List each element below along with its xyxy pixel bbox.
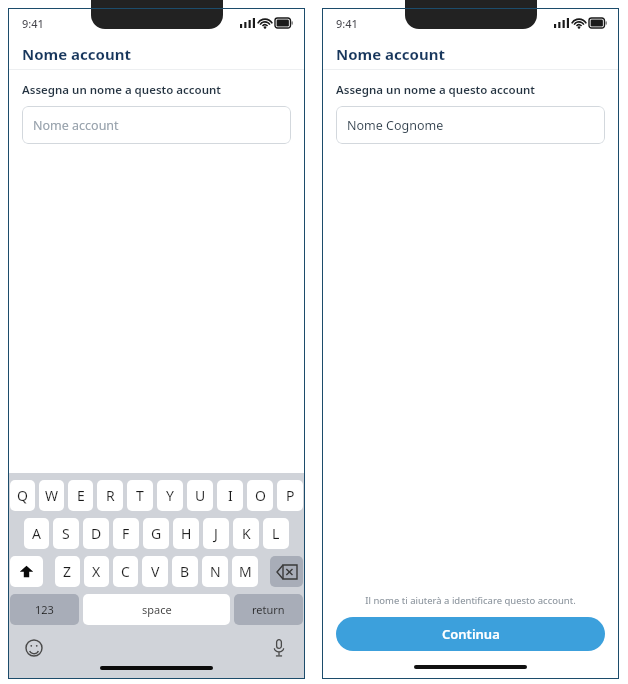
staticText: W <box>45 486 59 505</box>
staticText: space <box>142 602 172 617</box>
button[interactable]: space <box>83 594 230 625</box>
staticText: U <box>195 486 206 505</box>
button[interactable]: J <box>203 518 229 549</box>
button[interactable]: Z <box>55 556 80 587</box>
staticText: T <box>136 486 144 505</box>
staticText: Z <box>63 562 72 581</box>
staticText: 123 <box>35 602 54 617</box>
staticText: Nome Cognome <box>347 117 444 134</box>
button[interactable]: R <box>97 480 123 511</box>
staticText: Nome account <box>22 44 131 64</box>
button[interactable]: C <box>113 556 138 587</box>
staticText: Assegna un nome a questo account <box>22 82 222 98</box>
button[interactable]: H <box>173 518 199 549</box>
staticText: V <box>151 562 160 581</box>
staticText: X <box>92 562 101 581</box>
button[interactable] <box>270 556 303 587</box>
button[interactable]: S <box>53 518 79 549</box>
staticText: R <box>106 486 115 505</box>
button[interactable]: I <box>217 480 243 511</box>
staticText: Q <box>17 486 28 505</box>
staticText: Nome account <box>336 44 445 64</box>
button[interactable]: Emoji <box>22 636 46 660</box>
button[interactable]: 123 <box>10 594 79 625</box>
button[interactable]: Dictation <box>267 636 291 660</box>
staticText: return <box>252 602 285 617</box>
button[interactable]: Y <box>157 480 183 511</box>
staticText: P <box>286 486 295 505</box>
staticText: 9:41 <box>22 16 44 31</box>
button[interactable]: Nome Cognome <box>336 106 605 144</box>
button[interactable]: Nome account <box>22 106 291 144</box>
staticText: Il nome ti aiuterà a identificare questo… <box>338 594 603 607</box>
staticText: M <box>239 562 252 581</box>
button[interactable]: Continua <box>336 617 605 651</box>
staticText: O <box>255 486 266 505</box>
button[interactable]: G <box>143 518 169 549</box>
staticText: Assegna un nome a questo account <box>336 82 536 98</box>
staticText: A <box>32 524 41 543</box>
staticText: 9:41 <box>336 16 358 31</box>
staticText: S <box>62 524 70 543</box>
staticText: Continua <box>442 625 500 643</box>
button[interactable]: O <box>247 480 273 511</box>
staticText: J <box>214 524 218 543</box>
button[interactable]: Shift <box>10 556 43 587</box>
staticText: D <box>91 524 102 543</box>
staticText: L <box>272 524 280 543</box>
staticText: I <box>228 486 233 505</box>
staticText: E <box>77 486 85 505</box>
staticText: G <box>151 524 162 543</box>
staticText: C <box>121 562 130 581</box>
button[interactable]: L <box>263 518 289 549</box>
button[interactable]: U <box>187 480 213 511</box>
button[interactable]: N <box>202 556 228 587</box>
staticText: B <box>180 562 190 581</box>
staticText: K <box>242 524 251 543</box>
staticText: F <box>122 524 130 543</box>
button[interactable]: W <box>39 480 64 511</box>
staticText: N <box>210 562 221 581</box>
button[interactable]: D <box>83 518 109 549</box>
button[interactable]: B <box>172 556 198 587</box>
staticText: Nome account <box>33 117 119 134</box>
button[interactable]: K <box>233 518 259 549</box>
staticText: Y <box>166 486 174 505</box>
button[interactable]: P <box>277 480 303 511</box>
button[interactable]: X <box>84 556 109 587</box>
button[interactable]: M <box>232 556 258 587</box>
button[interactable]: F <box>113 518 139 549</box>
button[interactable]: A <box>24 518 49 549</box>
staticText: H <box>181 524 192 543</box>
button[interactable]: Q <box>10 480 35 511</box>
button[interactable]: T <box>127 480 153 511</box>
button[interactable]: E <box>68 480 93 511</box>
button[interactable]: V <box>142 556 168 587</box>
button[interactable]: return <box>234 594 303 625</box>
